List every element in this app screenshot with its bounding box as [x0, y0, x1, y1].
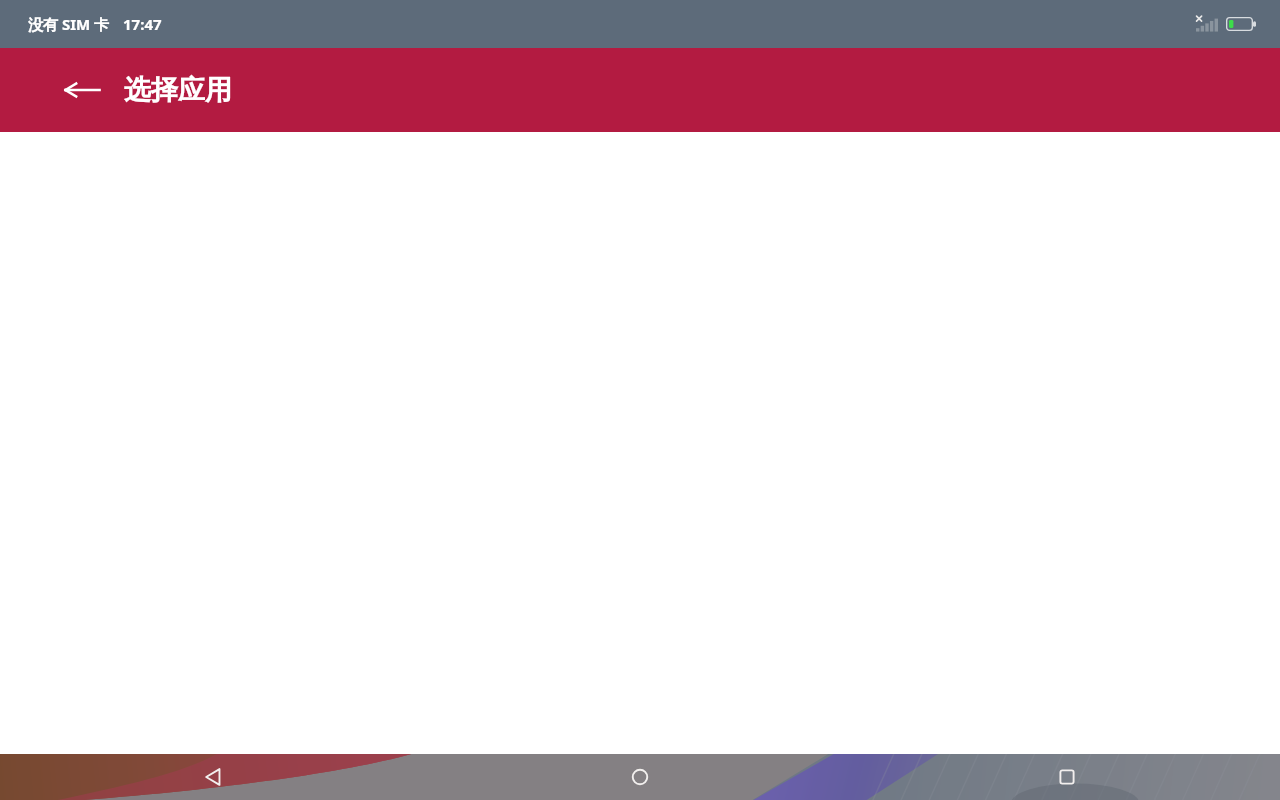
staticText: 17:47 [123, 14, 162, 34]
button[interactable]: 返回 [0, 754, 426, 800]
button[interactable]: 主屏幕 [426, 754, 853, 800]
button[interactable]: 最近任务 [853, 754, 1280, 800]
staticText: 没有 SIM 卡 [28, 14, 110, 34]
button[interactable]: 返回 [58, 66, 106, 114]
staticText: 选择应用 [124, 73, 232, 107]
